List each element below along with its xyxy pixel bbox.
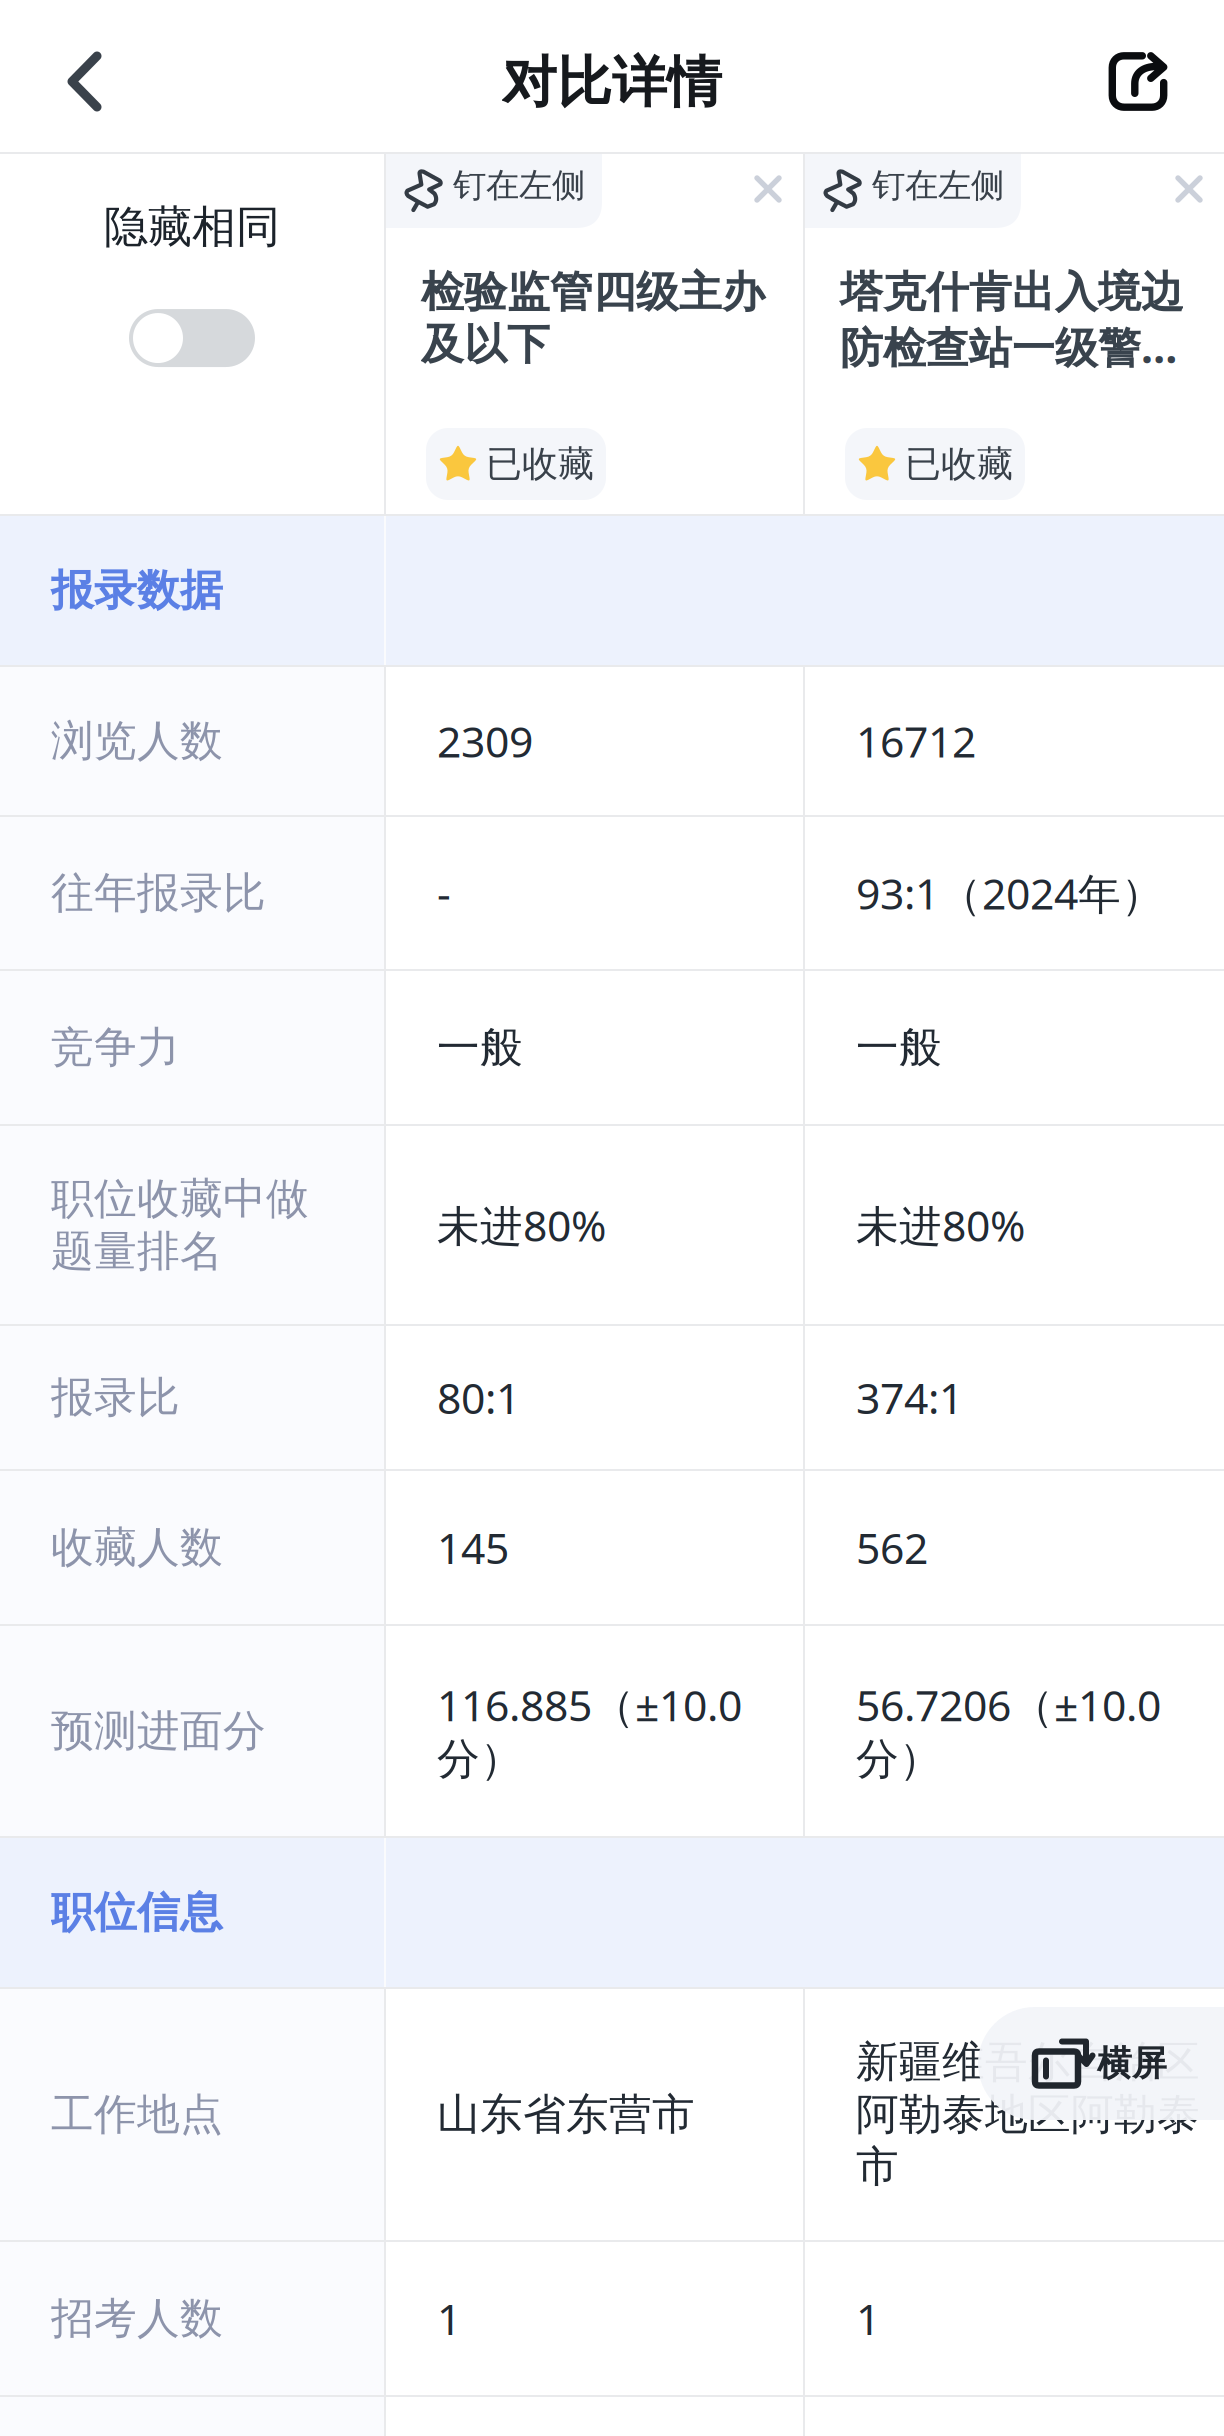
staticText: 报录比 [51, 1371, 180, 1424]
button[interactable]: 移除 [737, 158, 799, 220]
button[interactable]: 移除 [1158, 158, 1220, 220]
staticText: 一般 [856, 1021, 942, 1074]
staticText: 山东省东营市 [437, 2088, 695, 2141]
button[interactable]: 钉在左侧 [805, 154, 1021, 228]
button[interactable]: 钉在左侧 [386, 154, 602, 228]
button[interactable]: 隐藏相同 [129, 309, 255, 367]
staticText: 收藏人数 [51, 1521, 223, 1574]
staticText: 检验监管四级主办及以下 [421, 266, 765, 371]
staticText: 已收藏 [905, 442, 1013, 486]
staticText: 钉在左侧 [872, 165, 1004, 206]
button[interactable]: 返回 [33, 29, 137, 133]
staticText: 浏览人数 [51, 715, 223, 767]
staticText: - [437, 865, 451, 921]
staticText: 对比详情 [502, 49, 722, 116]
staticText: 横屏 [1097, 2042, 1167, 2085]
staticText: 职位收藏中做题量排名 [51, 1173, 309, 1277]
button[interactable]: 分享 [1086, 29, 1190, 133]
staticText: 未进80% [856, 1197, 1025, 1253]
staticText: 1 [856, 2290, 880, 2347]
staticText: 报录数据 [51, 564, 223, 617]
staticText: 93:1（2024年） [856, 865, 1164, 921]
staticText: 未进80% [437, 1197, 606, 1253]
staticText: 一般 [437, 1021, 523, 1074]
staticText: 145 [437, 1519, 509, 1576]
staticText: 2309 [437, 713, 533, 769]
staticText: 已收藏 [486, 442, 594, 486]
staticText: 56.7206（±10.0分） [856, 1676, 1161, 1786]
staticText: 1 [437, 2290, 461, 2347]
button[interactable]: 已收藏 [845, 428, 1025, 500]
staticText: 116.885（±10.0分） [437, 1676, 742, 1786]
staticText: 16712 [856, 713, 976, 769]
staticText: 预测进面分 [51, 1705, 266, 1757]
staticText: 工作地点 [51, 2088, 223, 2141]
staticText: 职位信息 [51, 1886, 223, 1939]
staticText: 562 [856, 1519, 928, 1576]
staticText: 塔克什肯出入境边防检查站一级警… [840, 266, 1184, 375]
staticText: 招考人数 [51, 2292, 223, 2345]
button[interactable]: 横屏 [978, 2007, 1224, 2120]
staticText: 钉在左侧 [453, 165, 585, 206]
staticText: 80:1 [437, 1369, 520, 1426]
staticText: 新疆维吾尔自治区阿勒泰地区阿勒泰市 [856, 2036, 1200, 2193]
staticText: 竞争力 [51, 1021, 180, 1074]
button[interactable]: 已收藏 [426, 428, 606, 500]
staticText: 往年报录比 [51, 867, 266, 919]
staticText: 隐藏相同 [104, 200, 280, 254]
staticText: 374:1 [856, 1369, 963, 1426]
